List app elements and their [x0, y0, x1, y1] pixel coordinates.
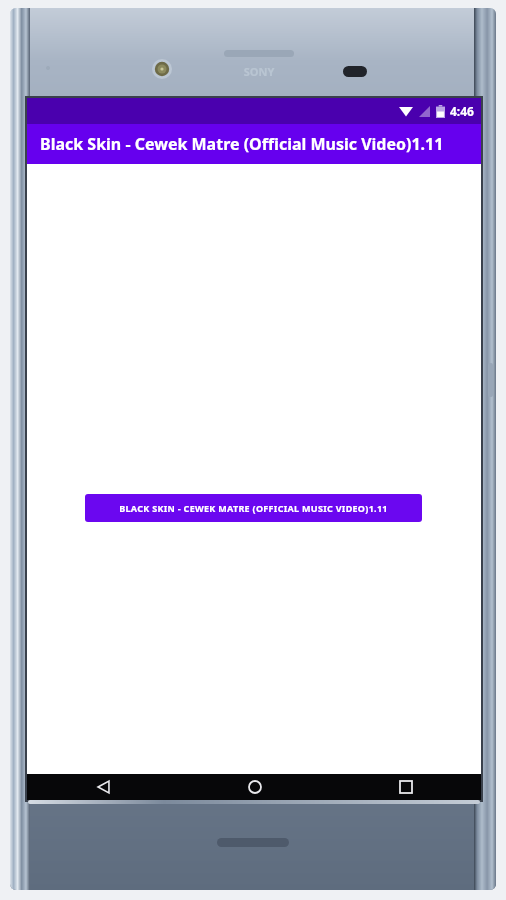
button[interactable]: BLACK SKIN - CEWEK MATRE (OFFICIAL MUSIC… — [85, 494, 422, 522]
button[interactable]: Back — [27, 774, 179, 800]
staticText: Black Skin - Cewek Matre (Official Music… — [40, 133, 444, 155]
button[interactable]: Home — [179, 774, 330, 800]
staticText: SONY — [224, 64, 294, 79]
staticText: 4:46 — [450, 103, 474, 119]
staticText: BLACK SKIN - CEWEK MATRE (OFFICIAL MUSIC… — [119, 502, 388, 514]
button[interactable]: Recent apps — [330, 774, 481, 800]
